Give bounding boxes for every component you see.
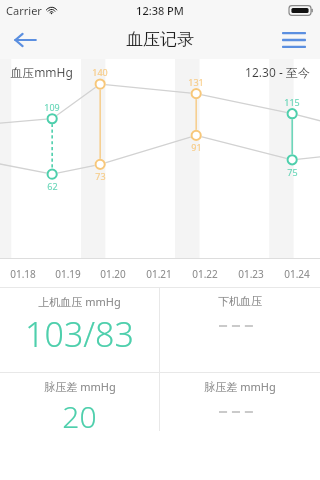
staticText: 62 (47, 180, 58, 192)
staticText: 血压记录 (126, 29, 194, 50)
staticText: 血压mmHg (10, 64, 73, 80)
staticText: 115 (284, 96, 300, 108)
staticText: 131 (188, 76, 204, 88)
button[interactable]: 脉压差 mmHg (160, 373, 320, 431)
staticText: 103/83 (25, 311, 134, 357)
staticText: 上机血压 mmHg (38, 294, 121, 309)
staticText: 脉压差 mmHg (44, 379, 116, 394)
staticText: 109 (44, 101, 60, 113)
button[interactable]: 下机血压 (160, 288, 320, 372)
staticText: Carrier (6, 3, 42, 18)
staticText: 91 (191, 141, 202, 153)
button[interactable]: 脉压差 mmHg (0, 373, 159, 431)
staticText: 脉压差 mmHg (204, 379, 276, 394)
staticText: 75 (287, 166, 298, 178)
staticText: 12.30 - 至今 (245, 64, 310, 80)
staticText: 01.18 (10, 267, 36, 281)
button[interactable]: 上机血压 mmHg (0, 288, 159, 372)
staticText: 01.24 (284, 267, 310, 281)
staticText: 12:38 PM (136, 3, 184, 18)
staticText: 01.20 (100, 267, 126, 281)
staticText: 01.21 (146, 267, 172, 281)
staticText: 140 (92, 66, 108, 78)
staticText: 下机血压 (218, 294, 262, 308)
staticText: 73 (95, 170, 106, 182)
button[interactable]: Back (0, 20, 50, 59)
staticText: 01.23 (238, 267, 264, 281)
staticText: 01.19 (55, 267, 81, 281)
button[interactable]: Menu (268, 20, 320, 59)
staticText: 20 (62, 396, 97, 431)
staticText: 01.22 (192, 267, 218, 281)
